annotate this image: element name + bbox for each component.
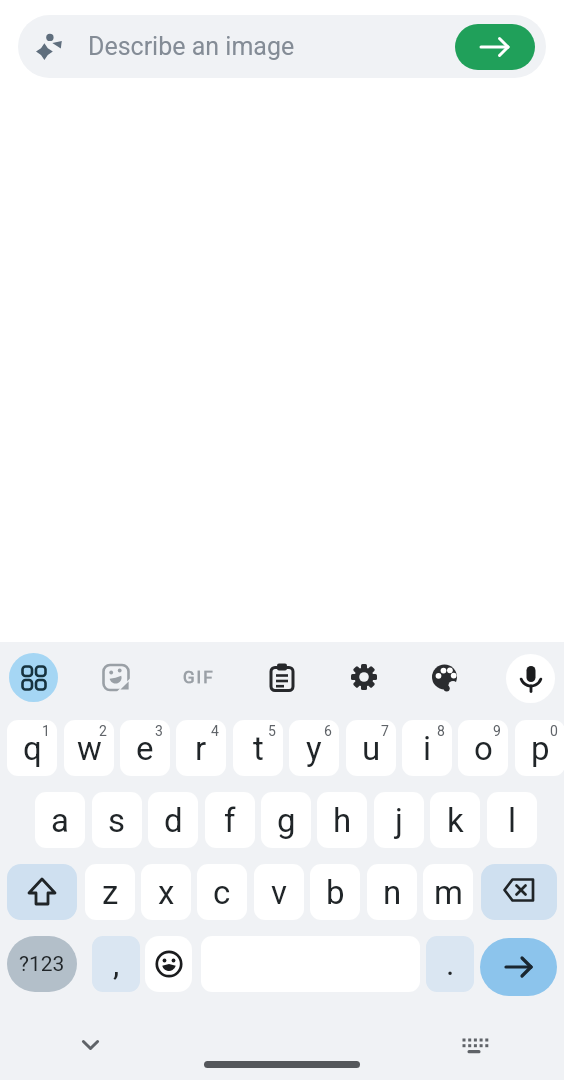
button[interactable] bbox=[258, 653, 306, 701]
staticText: v bbox=[271, 873, 287, 912]
staticText: s bbox=[108, 801, 126, 840]
staticText: 2 bbox=[99, 723, 107, 739]
button[interactable]: t bbox=[233, 720, 283, 776]
staticText: x bbox=[158, 873, 175, 912]
button[interactable] bbox=[481, 864, 557, 920]
button[interactable]: . bbox=[426, 936, 474, 992]
button[interactable]: b bbox=[310, 864, 360, 920]
staticText: 9 bbox=[493, 723, 501, 739]
button[interactable] bbox=[66, 1040, 115, 1080]
staticText: 5 bbox=[268, 723, 276, 739]
button[interactable]: v bbox=[254, 864, 304, 920]
button[interactable]: p bbox=[515, 720, 564, 776]
staticText: 4 bbox=[211, 723, 219, 739]
staticText: 7 bbox=[381, 723, 389, 739]
staticText: y bbox=[306, 729, 322, 768]
staticText: 6 bbox=[324, 723, 332, 739]
button[interactable] bbox=[145, 936, 192, 992]
staticText: q bbox=[23, 729, 42, 768]
staticText: 8 bbox=[437, 723, 445, 739]
button[interactable]: m bbox=[423, 864, 473, 920]
button[interactable]: z bbox=[85, 864, 135, 920]
button[interactable]: u bbox=[346, 720, 396, 776]
staticText: o bbox=[474, 729, 493, 768]
button[interactable]: j bbox=[374, 792, 424, 848]
button[interactable] bbox=[340, 653, 388, 701]
staticText: 1 bbox=[42, 723, 50, 739]
button[interactable]: q bbox=[7, 720, 57, 776]
staticText: u bbox=[362, 729, 381, 768]
button[interactable] bbox=[421, 653, 469, 701]
button[interactable] bbox=[92, 653, 140, 701]
button[interactable]: GIF bbox=[169, 653, 229, 701]
staticText: . bbox=[446, 945, 455, 983]
button[interactable]: x bbox=[141, 864, 191, 920]
staticText: 3 bbox=[155, 723, 163, 739]
staticText: k bbox=[447, 801, 464, 840]
button[interactable]: n bbox=[367, 864, 417, 920]
button[interactable]: d bbox=[148, 792, 198, 848]
staticText: g bbox=[277, 801, 296, 840]
button[interactable]: l bbox=[487, 792, 537, 848]
staticText: , bbox=[113, 945, 120, 983]
staticText: n bbox=[383, 873, 402, 912]
button[interactable] bbox=[455, 24, 535, 70]
staticText: f bbox=[224, 801, 236, 840]
button[interactable]: w bbox=[64, 720, 114, 776]
staticText: ?123 bbox=[19, 952, 65, 977]
staticText: t bbox=[253, 729, 264, 768]
button[interactable]: k bbox=[430, 792, 480, 848]
button[interactable] bbox=[180, 1054, 384, 1076]
staticText: 0 bbox=[550, 723, 558, 739]
button[interactable] bbox=[506, 654, 555, 703]
button[interactable]: Describe an image bbox=[18, 15, 546, 78]
button[interactable]: e bbox=[120, 720, 170, 776]
button[interactable]: i bbox=[402, 720, 452, 776]
staticText: i bbox=[423, 729, 432, 768]
button[interactable]: o bbox=[458, 720, 508, 776]
staticText: w bbox=[77, 729, 102, 768]
staticText: l bbox=[508, 801, 517, 840]
staticText: Describe an image bbox=[88, 32, 295, 61]
button[interactable]: f bbox=[205, 792, 255, 848]
button[interactable]: y bbox=[289, 720, 339, 776]
staticText: m bbox=[434, 873, 463, 912]
staticText: b bbox=[326, 873, 345, 912]
staticText: a bbox=[51, 801, 69, 840]
button[interactable]: , bbox=[92, 936, 140, 992]
staticText: d bbox=[164, 801, 183, 840]
button[interactable] bbox=[7, 864, 77, 920]
staticText: z bbox=[102, 873, 119, 912]
button[interactable]: a bbox=[35, 792, 85, 848]
button[interactable] bbox=[9, 653, 58, 702]
button[interactable]: c bbox=[197, 864, 247, 920]
button[interactable] bbox=[480, 938, 557, 996]
button[interactable]: g bbox=[261, 792, 311, 848]
button[interactable] bbox=[450, 1040, 499, 1080]
button[interactable]: ?123 bbox=[7, 936, 77, 992]
staticText: h bbox=[333, 801, 352, 840]
staticText: j bbox=[395, 801, 403, 840]
staticText: c bbox=[213, 873, 231, 912]
button[interactable]: s bbox=[92, 792, 142, 848]
staticText: e bbox=[136, 729, 154, 768]
staticText: p bbox=[531, 729, 550, 768]
button[interactable]: h bbox=[317, 792, 367, 848]
staticText: GIF bbox=[183, 667, 215, 687]
staticText: r bbox=[195, 729, 207, 768]
button[interactable]: r bbox=[176, 720, 226, 776]
